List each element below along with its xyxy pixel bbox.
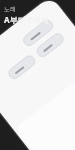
button[interactable]: 노래 (4, 5, 49, 25)
other: Music app preview (0, 0, 75, 150)
staticText: A부터 Z까지 (4, 14, 49, 25)
staticText: 노래 (4, 5, 16, 13)
